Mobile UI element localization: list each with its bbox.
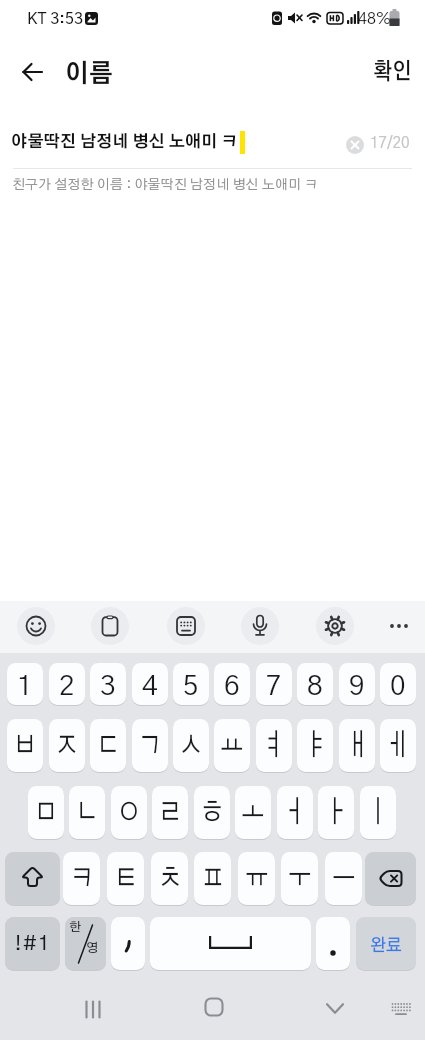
button[interactable]: 8 (297, 663, 333, 705)
button[interactable]: 완료 (356, 917, 416, 970)
staticText: 친구가 설정한 이름 : 야물딱진 남정네 병신 노애미 ㅋ (12, 178, 319, 192)
staticText: ㅇ (117, 798, 141, 828)
staticText: ㅋ (70, 864, 94, 894)
button[interactable]: ㅡ (325, 852, 362, 905)
button[interactable]: ㅊ (151, 852, 188, 905)
button[interactable]: 2 (49, 663, 85, 705)
staticText: 8 (307, 673, 323, 701)
button[interactable] (5, 852, 60, 905)
button[interactable]: ㅈ (49, 719, 85, 772)
staticText: 확인 (373, 60, 412, 84)
button[interactable]: 6 (214, 663, 250, 705)
button[interactable]: ㅜ (281, 852, 318, 905)
button[interactable]: ㅍ (194, 852, 231, 905)
button[interactable]: 9 (339, 663, 375, 705)
staticText: 3 (100, 673, 116, 701)
button[interactable] (313, 604, 357, 648)
staticText: ㅛ (220, 731, 244, 761)
button[interactable] (315, 988, 355, 1028)
staticText: 9 (349, 673, 365, 701)
staticText: ㅐ (345, 731, 369, 761)
button[interactable]: 5 (173, 663, 209, 705)
button[interactable] (365, 852, 416, 905)
button[interactable] (238, 604, 282, 648)
staticText: 48% (358, 11, 392, 27)
button[interactable]: ㅌ (107, 852, 144, 905)
staticText: ㅅ (179, 731, 203, 761)
button[interactable]: ㄷ (90, 719, 126, 772)
button[interactable]: ㅐ (339, 719, 375, 772)
staticText: ㅣ (366, 798, 390, 828)
staticText: ㄹ (158, 798, 182, 828)
staticText: ㅗ (241, 798, 265, 828)
button[interactable]: ㅅ (173, 719, 209, 772)
button[interactable]: ㅎ (194, 786, 230, 839)
button[interactable]: ㅁ (28, 786, 64, 839)
staticText: 2 (59, 673, 75, 701)
button[interactable]: 0 (380, 663, 416, 705)
staticText: ㄱ (138, 731, 162, 761)
button[interactable]: 1 (7, 663, 43, 705)
staticText: 영 (86, 942, 99, 955)
staticText: ㅊ (158, 864, 182, 894)
staticText: ㅕ (262, 731, 286, 761)
staticText: 1 (17, 673, 33, 701)
button[interactable] (14, 604, 58, 648)
staticText: 완료 (370, 937, 403, 956)
button[interactable]: ㅗ (235, 786, 271, 839)
button[interactable]: ㅛ (214, 719, 250, 772)
button[interactable]: 3 (90, 663, 126, 705)
staticText: ㅓ (283, 798, 307, 828)
button[interactable]: ㅣ (360, 786, 396, 839)
staticText: 이름 (65, 62, 113, 88)
button[interactable]: ㅋ (63, 852, 100, 905)
button[interactable] (381, 989, 421, 1029)
button[interactable] (73, 989, 113, 1029)
button[interactable]: !#1 (5, 917, 60, 970)
staticText: 0 (390, 673, 406, 701)
button[interactable] (346, 136, 364, 154)
button[interactable] (164, 604, 208, 648)
staticText: ㅑ (303, 731, 327, 761)
button[interactable]: 한 (65, 917, 106, 970)
button[interactable]: ㄹ (152, 786, 188, 839)
staticText: ㅁ (34, 798, 58, 828)
button[interactable] (88, 604, 132, 648)
staticText: ㄴ (75, 798, 99, 828)
button[interactable]: 7 (256, 663, 292, 705)
staticText: ㅍ (201, 864, 225, 894)
button[interactable]: ㅕ (256, 719, 292, 772)
staticText: 한 (69, 921, 82, 934)
staticText: ㅌ (114, 864, 138, 894)
staticText: 4 (142, 673, 158, 701)
staticText: ㅎ (200, 798, 224, 828)
button[interactable]: ㅠ (238, 852, 275, 905)
button[interactable]: ㅏ (318, 786, 354, 839)
staticText: ㅈ (55, 731, 79, 761)
button[interactable]: ㅓ (277, 786, 313, 839)
staticText: ㅜ (288, 864, 312, 894)
button[interactable]: ㄱ (132, 719, 168, 772)
staticText: 7 (266, 673, 282, 701)
button[interactable] (150, 917, 311, 970)
button[interactable] (111, 917, 145, 970)
button[interactable]: ㅔ (380, 719, 416, 772)
button[interactable]: 야물딱진 남정네 병신 노애미 ㅋ (11, 131, 245, 154)
button[interactable] (194, 987, 234, 1027)
button[interactable]: ㅑ (297, 719, 333, 772)
staticText: ㄷ (96, 731, 120, 761)
button[interactable]: ㄴ (69, 786, 105, 839)
button[interactable]: 4 (132, 663, 168, 705)
button[interactable]: 확인 (366, 52, 418, 92)
button[interactable] (316, 917, 350, 970)
staticText: ㅂ (13, 731, 37, 761)
staticText: ㅡ (332, 864, 356, 894)
staticText: KT 3:53 (27, 11, 84, 27)
staticText: ㅏ (324, 798, 348, 828)
staticText: !#1 (15, 934, 51, 954)
button[interactable] (12, 52, 52, 92)
staticText: 17/20 (370, 136, 410, 152)
button[interactable]: ㅂ (7, 719, 43, 772)
button[interactable]: ㅇ (111, 786, 147, 839)
button[interactable] (377, 604, 421, 648)
